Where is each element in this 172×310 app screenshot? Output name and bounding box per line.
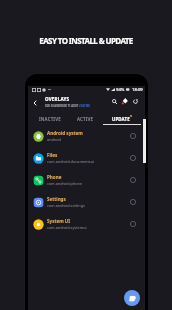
staticText: Settings (47, 196, 66, 202)
staticText: ACTIVE (77, 116, 94, 122)
button[interactable]: Back (30, 98, 40, 108)
staticText: Android system (47, 130, 83, 136)
button[interactable]: Android system (28, 125, 145, 147)
staticText: 18:09 (132, 87, 143, 92)
staticText: OVERLAYS (45, 96, 70, 102)
staticText: com.android.documentsui (47, 159, 94, 164)
staticText: 94% (116, 87, 125, 92)
staticText: EASY TO INSTALL & UPDATE (0, 35, 172, 46)
button[interactable]: Files (28, 147, 145, 169)
button[interactable]: Settings (28, 191, 145, 213)
button[interactable]: System UI (28, 213, 145, 235)
staticText: UPDATE (112, 116, 130, 122)
button[interactable]: INACTIVE (32, 113, 67, 124)
button[interactable]: Phone (28, 169, 145, 191)
staticText: #1A73E8 (79, 104, 90, 108)
staticText: com.android.phone (47, 181, 83, 186)
button[interactable]: Search (109, 96, 119, 106)
button[interactable]: UPDATE (103, 113, 139, 124)
staticText: System UI (47, 218, 71, 224)
staticText: Phone (47, 174, 62, 180)
button[interactable]: ACTIVE (67, 113, 103, 124)
staticText: SDK 30 ANDROID 11 ACNT (45, 104, 79, 108)
staticText: android (47, 137, 61, 142)
staticText: INACTIVE (39, 116, 61, 122)
button[interactable]: Apply theme (124, 290, 140, 306)
button[interactable]: Refresh (130, 96, 140, 106)
staticText: com.android.settings (47, 203, 85, 208)
staticText: Files (47, 152, 58, 158)
button[interactable]: Theme (120, 96, 130, 106)
staticText: com.android.systemui (47, 225, 87, 230)
